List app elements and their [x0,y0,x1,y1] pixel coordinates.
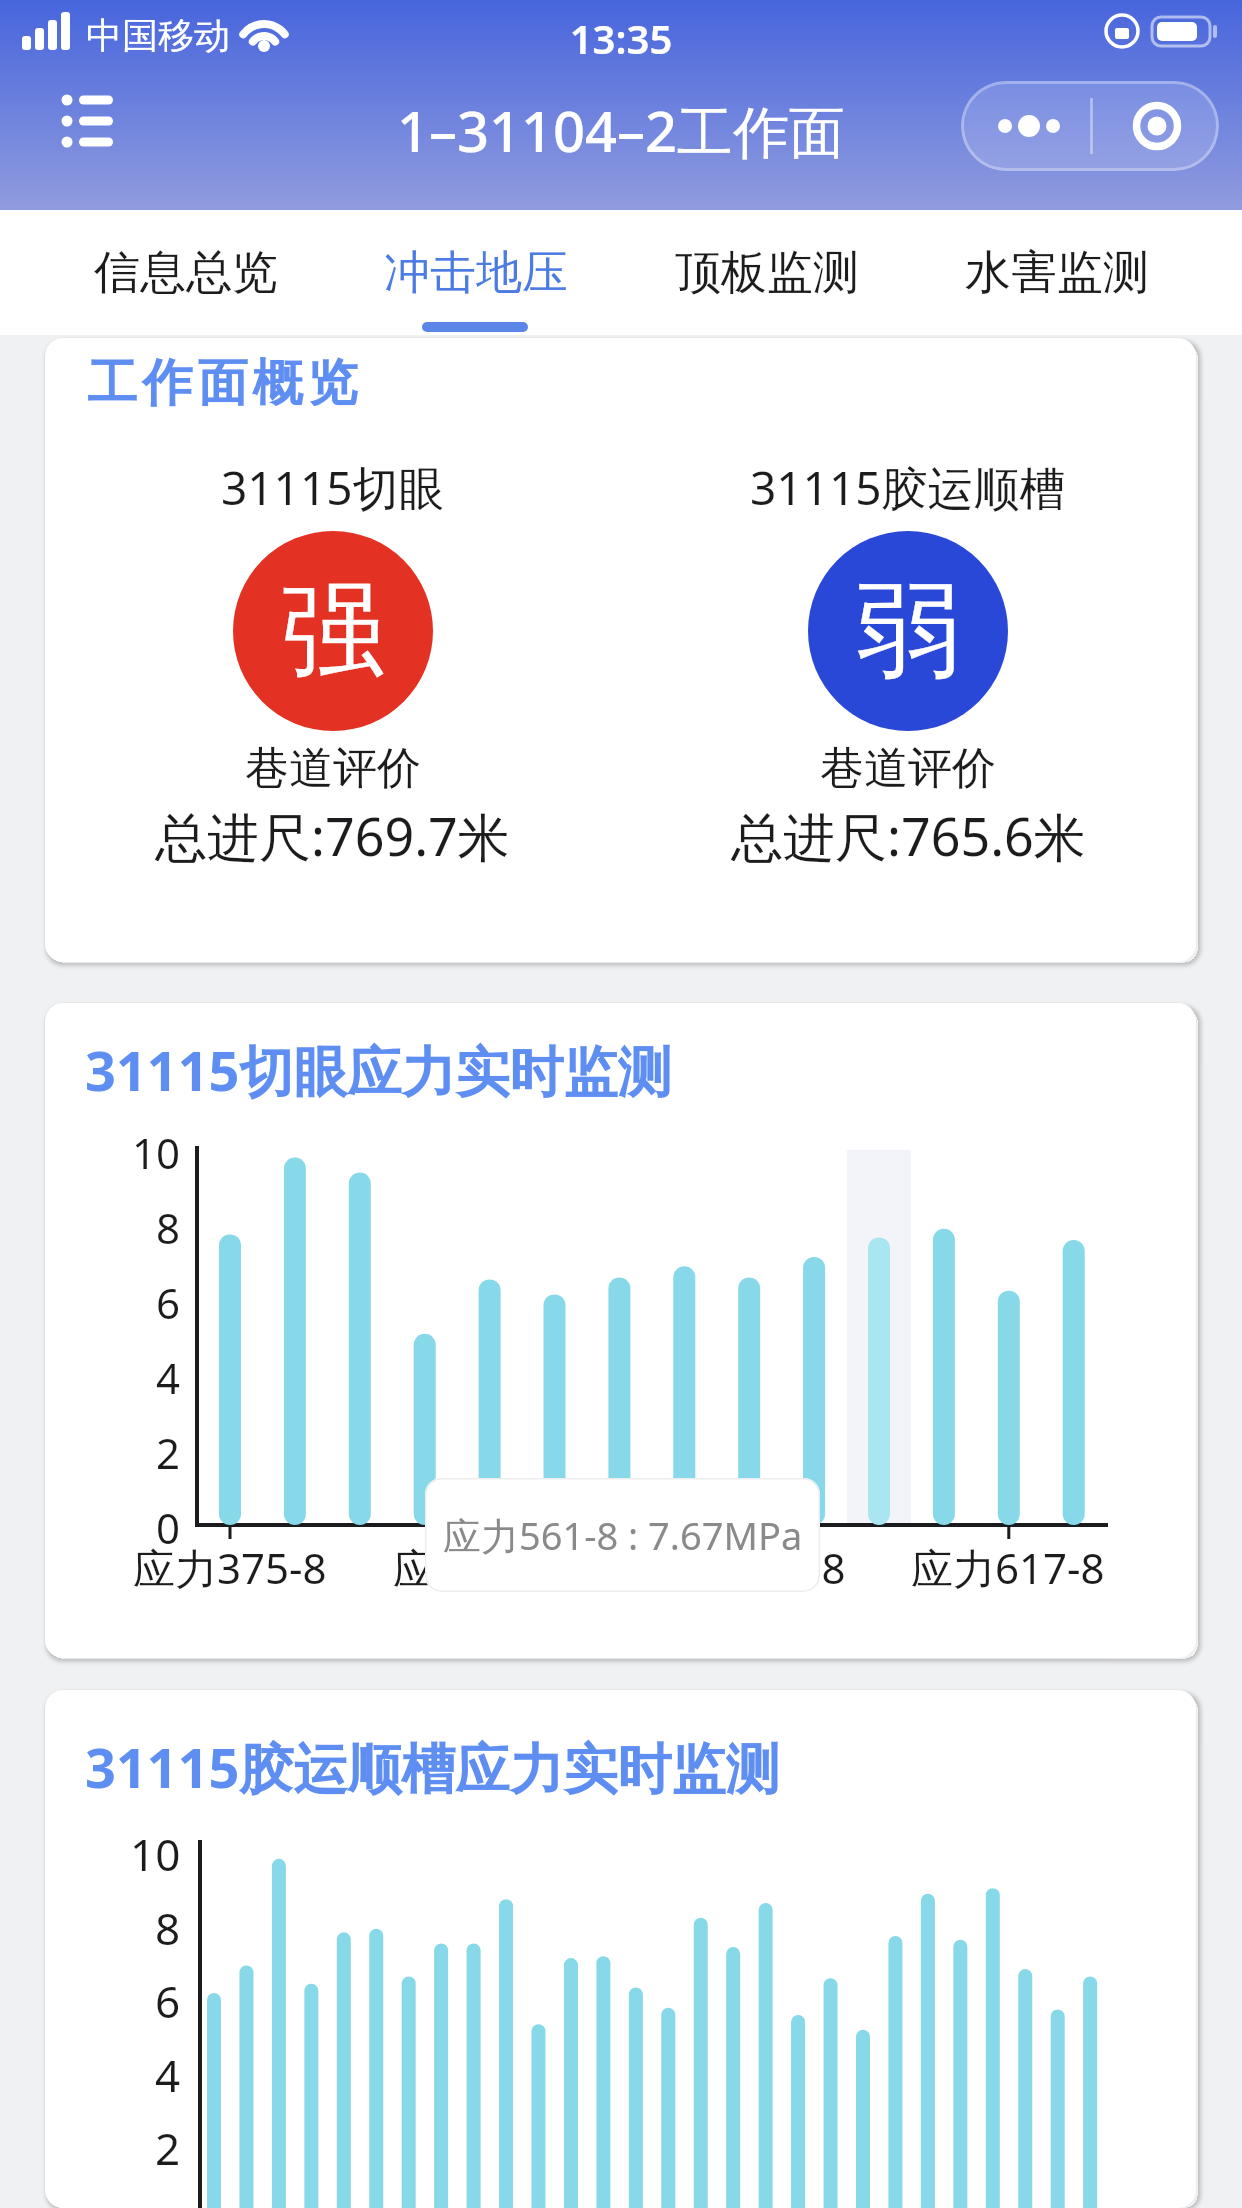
staticText: 中国移动 [86,13,230,58]
staticText: 信息总览 [94,244,278,302]
staticText: 巷道评价 [820,741,996,796]
staticText: 10 [130,1824,181,1884]
staticText: 应力617-8 [911,1539,1105,1596]
button[interactable] [55,90,121,150]
staticText: 6 [155,1971,181,2031]
staticText: 工作面概览 [85,352,360,415]
staticText: 2 [156,1424,181,1481]
staticText: 总进尺:765.6米 [731,800,1086,871]
staticText: 31115胶运顺槽 [750,456,1066,519]
staticText: 应力375-8 [133,1539,327,1596]
button[interactable]: 信息总览 [94,244,278,302]
staticText: 31115切眼应力实时监测 [85,1033,672,1107]
staticText: 应力561-8 : 7.67MPa [443,1509,803,1561]
staticText: 1–31104–2工作面 [0,92,1242,168]
staticText: 顶板监测 [675,244,859,302]
staticText: 10 [132,1124,181,1181]
staticText: 6 [156,1274,181,1331]
staticText: 弱 [856,566,960,697]
button[interactable] [961,81,1090,171]
staticText: 2 [155,2118,181,2178]
button[interactable]: 冲击地压 [384,244,568,302]
button[interactable]: 水害监测 [965,244,1149,302]
staticText: 强 [281,566,385,697]
staticText: 应力536-8 [652,1539,846,1596]
staticText: 4 [156,1349,181,1406]
staticText: 31115切眼 [221,456,445,519]
staticText: 巷道评价 [245,741,421,796]
staticText: 应力455-8 [393,1539,587,1596]
button[interactable]: 顶板监测 [675,244,859,302]
staticText: 0 [156,1499,181,1556]
staticText: 冲击地压 [384,244,568,302]
staticText: 31115胶运顺槽应力实时监测 [85,1730,780,1804]
staticText: 4 [155,2045,181,2105]
button[interactable] [1090,81,1219,171]
staticText: 13:35 [0,11,1242,65]
staticText: 8 [156,1199,181,1256]
staticText: 总进尺:769.7米 [155,800,510,871]
staticText: 8 [155,1898,181,1958]
staticText: 水害监测 [965,244,1149,302]
